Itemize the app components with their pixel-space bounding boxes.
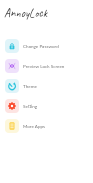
button[interactable]: Theme <box>0 76 93 96</box>
button[interactable]: More Apps <box>0 116 93 136</box>
staticText: Preview Lock Screen <box>23 63 65 69</box>
button[interactable]: Setting <box>0 96 93 116</box>
button[interactable]: Preview Lock Screen <box>0 56 93 76</box>
staticText: Change Password <box>23 43 59 49</box>
staticText: Theme <box>23 83 37 89</box>
staticText: More Apps <box>23 123 46 129</box>
staticText: Setting <box>23 103 38 109</box>
staticText: AnnoyLock <box>4 5 48 20</box>
button[interactable]: Change Password <box>0 36 93 56</box>
